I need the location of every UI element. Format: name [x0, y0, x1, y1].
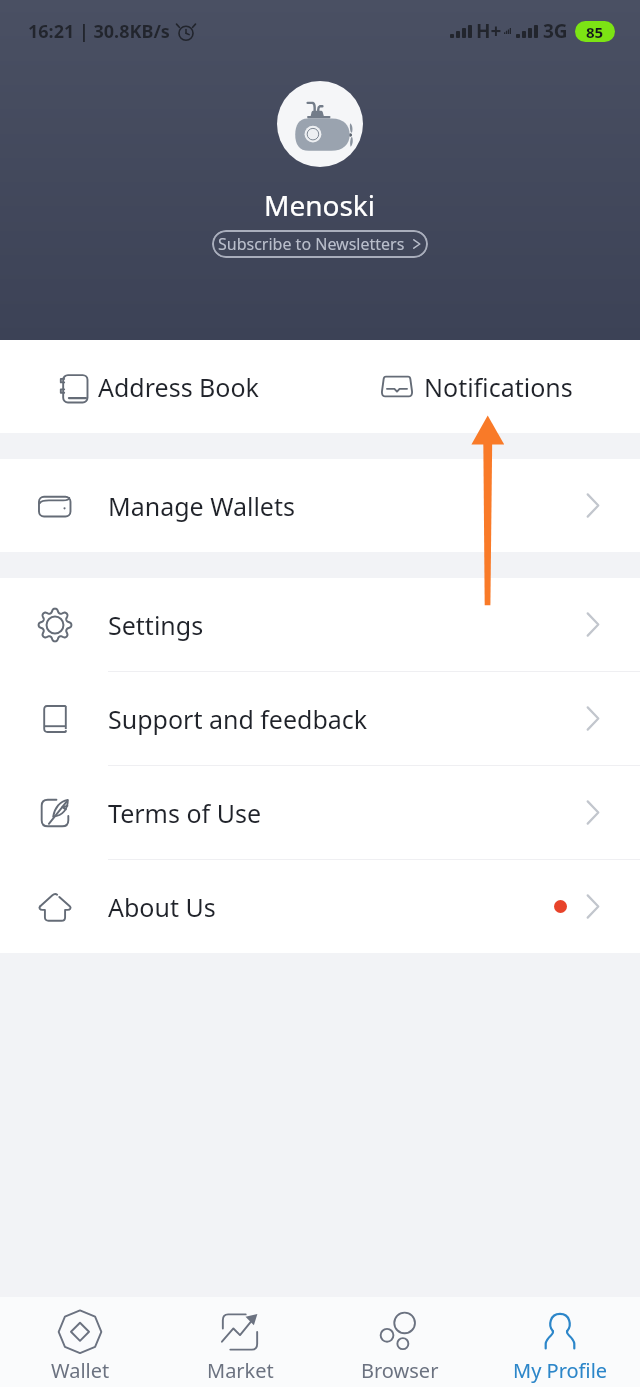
button[interactable]: Address Book [0, 340, 320, 433]
button[interactable]: Subscribe to Newsletters [212, 230, 428, 258]
button[interactable]: About Us [0, 860, 640, 953]
staticText: 16:21 | 30.8KB/s [28, 19, 170, 44]
button[interactable]: Market [160, 1297, 320, 1387]
button[interactable]: Support and feedback [0, 672, 640, 765]
button[interactable]: My Profile [480, 1297, 640, 1387]
staticText: Manage Wallets [108, 489, 295, 523]
button[interactable]: Notifications [320, 340, 640, 433]
button[interactable]: Manage Wallets [0, 459, 640, 552]
staticText: My Profile [513, 1357, 608, 1384]
staticText: 85 [586, 22, 604, 42]
button[interactable]: Terms of Use [0, 766, 640, 859]
staticText: Notifications [424, 370, 573, 404]
staticText: Address Book [98, 370, 259, 404]
staticText: About Us [108, 890, 216, 924]
button[interactable]: Wallet [0, 1297, 160, 1387]
staticText: Wallet [51, 1357, 110, 1384]
staticText: Support and feedback [108, 702, 368, 736]
staticText: Browser [361, 1357, 439, 1384]
staticText: Terms of Use [108, 796, 262, 830]
button[interactable]: Settings [0, 578, 640, 671]
staticText: Settings [108, 608, 204, 642]
staticText: Market [207, 1357, 274, 1384]
staticText: 3G [543, 18, 568, 44]
staticText: Subscribe to Newsletters [218, 233, 405, 255]
button[interactable]: Browser [320, 1297, 480, 1387]
staticText: Menoski [264, 186, 376, 224]
staticText: H+ [476, 18, 502, 44]
